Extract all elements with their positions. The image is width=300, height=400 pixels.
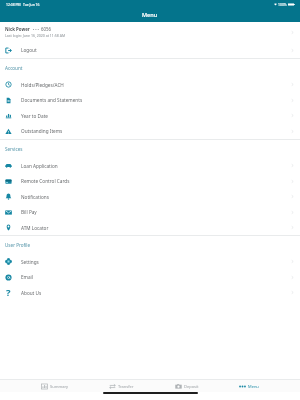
- button[interactable]: Settings: [0, 254, 300, 269]
- staticText: Documents and Statements: [21, 97, 83, 103]
- staticText: 100%: [278, 2, 287, 7]
- button[interactable]: Remote Control Cards: [0, 173, 300, 189]
- button[interactable]: Logout: [0, 42, 300, 58]
- button[interactable]: Summary: [41, 380, 69, 392]
- button[interactable]: Bill Pay: [0, 204, 300, 220]
- staticText: ?: [6, 286, 11, 299]
- staticText: Logout: [21, 47, 37, 53]
- button[interactable]: ?: [0, 285, 300, 300]
- button[interactable]: Notifications: [0, 189, 300, 204]
- staticText: Outstanding Items: [21, 128, 63, 134]
- staticText: Transfer: [118, 384, 134, 389]
- staticText: ATM Locator: [21, 225, 49, 231]
- staticText: • • •: [33, 27, 39, 32]
- staticText: Deposit: [184, 384, 199, 389]
- staticText: Tue Jun 16: [23, 2, 40, 7]
- staticText: Bill Pay: [21, 209, 37, 215]
- staticText: Loan Application: [21, 163, 58, 169]
- staticText: Settings: [21, 259, 39, 265]
- staticText: User Profile: [5, 242, 31, 248]
- staticText: 12:08 PM: [6, 2, 21, 7]
- staticText: Menu: [142, 11, 158, 18]
- staticText: About Us: [21, 290, 42, 296]
- staticText: Remote Control Cards: [21, 178, 70, 184]
- staticText: Holds/Pledges/ACH: [21, 82, 64, 88]
- button[interactable]: Outstanding Items: [0, 123, 300, 139]
- staticText: Account: [5, 65, 23, 71]
- button[interactable]: Year to Date: [0, 108, 300, 123]
- button[interactable]: Transfer: [109, 380, 134, 392]
- button[interactable]: Deposit: [175, 380, 199, 392]
- button[interactable]: Email: [0, 269, 300, 285]
- staticText: 6056: [41, 26, 52, 32]
- staticText: Menu: [248, 384, 259, 389]
- staticText: Nick Power: [5, 26, 30, 32]
- staticText: Notifications: [21, 194, 49, 200]
- button[interactable]: Documents and Statements: [0, 92, 300, 108]
- button[interactable]: ATM Locator: [0, 220, 300, 235]
- staticText: Year to Date: [21, 113, 48, 119]
- button[interactable]: Menu: [239, 380, 259, 392]
- button[interactable]: Nick Power: [0, 22, 300, 42]
- button[interactable]: Holds/Pledges/ACH: [0, 77, 300, 92]
- staticText: Last login: June 16, 2020 at 11:58 AM: [5, 33, 66, 38]
- button[interactable]: Loan Application: [0, 158, 300, 173]
- staticText: Email: [21, 274, 34, 280]
- staticText: Services: [5, 146, 23, 152]
- staticText: Summary: [50, 384, 69, 389]
